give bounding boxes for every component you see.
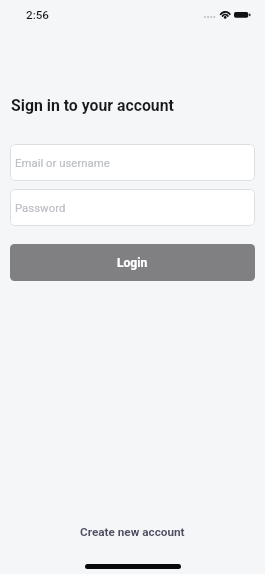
staticText: Sign in to your account [11,96,174,115]
other: Battery [234,12,251,18]
other: Wi-Fi [220,11,231,19]
staticText: Email or username [15,156,110,169]
staticText: Login [117,256,148,270]
button[interactable]: Create new account [70,520,195,544]
button[interactable]: Email or username [10,144,255,181]
other: Mobile signal [204,16,216,18]
staticText: 2:56 [26,8,50,22]
staticText: Password [15,201,66,214]
button[interactable]: Login [10,244,255,281]
button[interactable]: Password [10,189,255,226]
